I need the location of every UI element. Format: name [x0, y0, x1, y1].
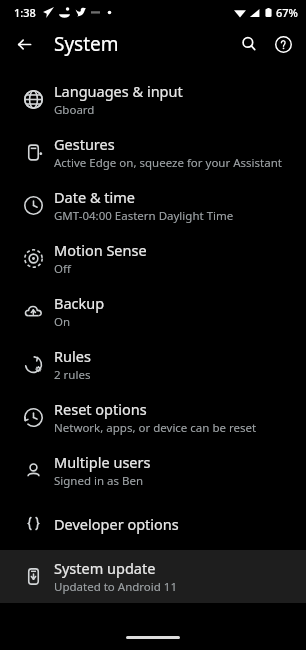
staticText: Off [54, 261, 71, 277]
button[interactable]: Gestures [0, 126, 306, 179]
button[interactable]: Back [8, 28, 40, 60]
staticText: Updated to Android 11 [54, 579, 177, 595]
staticText: Reset options [54, 399, 147, 419]
button[interactable]: Rules [0, 338, 306, 391]
staticText: 67% [276, 5, 298, 20]
button[interactable]: Date & time [0, 179, 306, 232]
button[interactable]: Reset options [0, 391, 306, 444]
staticText: Developer options [54, 514, 179, 534]
button[interactable]: Search [232, 27, 266, 61]
button[interactable]: Languages & input [0, 73, 306, 126]
staticText: Multiple users [54, 452, 151, 472]
button[interactable]: Help [266, 27, 300, 61]
staticText: Network, apps, or device can be reset [54, 420, 257, 436]
staticText: Active Edge on, squeeze for your Assista… [54, 155, 282, 171]
staticText: GMT-04:00 Eastern Daylight Time [54, 208, 234, 224]
staticText: Rules [54, 346, 91, 366]
staticText: Signed in as Ben [54, 473, 144, 489]
staticText: Languages & input [54, 81, 183, 101]
button[interactable]: System update [0, 550, 306, 603]
button[interactable]: Backup [0, 285, 306, 338]
button[interactable]: Motion Sense [0, 232, 306, 285]
staticText: Backup [54, 293, 105, 313]
staticText: Date & time [54, 187, 135, 207]
staticText: Gboard [54, 102, 95, 118]
staticText: Gestures [54, 134, 115, 154]
staticText: On [54, 314, 71, 330]
button[interactable]: Developer options [0, 497, 306, 550]
button[interactable]: Multiple users [0, 444, 306, 497]
staticText: System [54, 31, 119, 57]
staticText: 2 rules [54, 367, 91, 383]
staticText: System update [54, 558, 156, 578]
staticText: 1:38 [14, 5, 36, 20]
staticText: Motion Sense [54, 240, 147, 260]
